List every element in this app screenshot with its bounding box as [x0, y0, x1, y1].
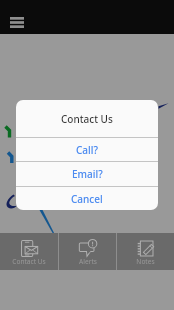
button[interactable]: Open navigation menu — [4, 11, 29, 33]
button[interactable]: Notes — [117, 233, 174, 270]
staticText: Call? — [76, 143, 98, 157]
button[interactable]: Email? — [16, 162, 158, 186]
button[interactable]: Contact Us — [0, 233, 58, 270]
staticText: Cancel — [71, 192, 103, 206]
staticText: Alerts — [79, 257, 97, 266]
staticText: Email? — [72, 167, 103, 181]
button[interactable]: Call? — [16, 138, 158, 161]
staticText: Contact Us — [12, 257, 46, 266]
staticText: Notes — [136, 257, 155, 266]
button[interactable]: Alerts — [59, 233, 116, 270]
button[interactable]: Cancel — [16, 187, 158, 210]
staticText: Contact Us — [61, 112, 113, 126]
